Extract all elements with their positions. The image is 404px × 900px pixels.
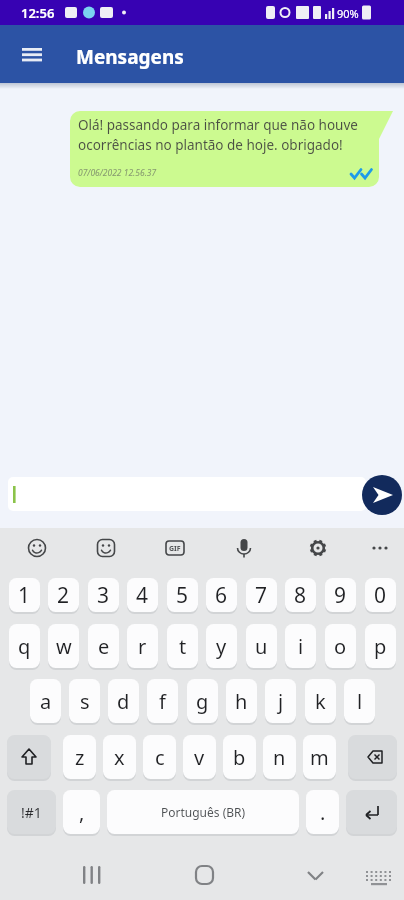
button[interactable] (300, 858, 332, 890)
button[interactable]: 4 (127, 578, 158, 612)
button[interactable]: k (305, 679, 336, 723)
staticText: f (159, 688, 166, 715)
button[interactable] (189, 858, 221, 890)
button[interactable] (89, 532, 123, 564)
button[interactable] (8, 477, 366, 511)
staticText: 12:56 (21, 4, 55, 22)
staticText: c (155, 744, 165, 771)
staticText: p (374, 633, 387, 660)
button[interactable]: b (223, 735, 256, 779)
button[interactable]: 0 (365, 578, 396, 612)
button[interactable]: u (246, 624, 277, 668)
button[interactable]: z (63, 735, 96, 779)
staticText: GIF (169, 544, 181, 554)
button[interactable]: l (344, 679, 375, 723)
staticText: n (273, 744, 286, 771)
staticText: s (80, 688, 90, 715)
button[interactable] (227, 532, 261, 564)
staticText: r (138, 633, 147, 660)
button[interactable] (296, 532, 330, 564)
staticText: 4 (136, 581, 149, 610)
staticText: 1 (18, 581, 31, 610)
button[interactable] (362, 475, 402, 515)
button[interactable]: r (127, 624, 158, 668)
staticText: a (40, 688, 52, 715)
staticText: i (298, 633, 304, 660)
staticText: 5 (176, 581, 189, 610)
button[interactable]: 1 (9, 578, 40, 612)
staticText: d (117, 688, 130, 715)
button[interactable] (362, 858, 394, 890)
button[interactable]: i (285, 624, 316, 668)
button[interactable]: 9 (325, 578, 356, 612)
staticText: q (18, 633, 31, 660)
button[interactable]: w (48, 624, 79, 668)
staticText: Português (BR) (161, 804, 246, 820)
staticText: 2 (57, 581, 70, 610)
button[interactable]: j (265, 679, 296, 723)
button[interactable]: q (9, 624, 40, 668)
staticText: 6 (215, 581, 228, 610)
staticText: m (310, 744, 329, 771)
button[interactable] (20, 532, 54, 564)
button[interactable]: 6 (206, 578, 237, 612)
button[interactable]: a (30, 679, 61, 723)
button[interactable] (365, 532, 399, 564)
staticText: ocorrências no plantão de hoje. obrigado… (78, 136, 343, 154)
button[interactable]: 5 (167, 578, 198, 612)
staticText: b (233, 744, 246, 771)
button[interactable] (7, 735, 51, 779)
button[interactable]: s (69, 679, 100, 723)
staticText: . (320, 799, 326, 826)
staticText: y (216, 633, 227, 660)
button[interactable]: 7 (246, 578, 277, 612)
staticText: j (278, 688, 284, 715)
staticText: 07/06/2022 12.56.37 (78, 167, 157, 179)
button[interactable]: p (365, 624, 396, 668)
button[interactable]: h (226, 679, 257, 723)
button[interactable]: n (263, 735, 296, 779)
staticText: k (315, 688, 326, 715)
staticText: u (255, 633, 268, 660)
staticText: x (114, 744, 125, 771)
button[interactable]: , (63, 790, 100, 834)
staticText: l (357, 688, 363, 715)
staticText: 9 (334, 581, 347, 610)
staticText: 90% (337, 6, 359, 21)
button[interactable] (14, 46, 52, 72)
staticText: !#1 (21, 803, 42, 822)
staticText: 7 (255, 581, 268, 610)
button[interactable]: c (143, 735, 176, 779)
staticText: 8 (294, 581, 307, 610)
button[interactable]: . (306, 790, 339, 834)
button[interactable]: 8 (285, 578, 316, 612)
button[interactable] (76, 858, 108, 890)
button[interactable] (348, 735, 397, 779)
staticText: o (334, 633, 347, 660)
staticText: Mensagens (76, 44, 184, 70)
button[interactable]: d (108, 679, 139, 723)
staticText: w (56, 633, 72, 660)
staticText: 3 (97, 581, 110, 610)
button[interactable]: v (183, 735, 216, 779)
staticText: , (79, 799, 85, 826)
button[interactable]: 2 (48, 578, 79, 612)
button[interactable]: m (303, 735, 336, 779)
button[interactable]: t (167, 624, 198, 668)
button[interactable]: g (187, 679, 218, 723)
button[interactable]: o (325, 624, 356, 668)
staticText: z (75, 744, 85, 771)
staticText: t (179, 633, 187, 660)
button[interactable]: !#1 (7, 790, 56, 834)
staticText: g (196, 688, 209, 715)
button[interactable]: e (88, 624, 119, 668)
button[interactable]: x (103, 735, 136, 779)
button[interactable]: f (147, 679, 178, 723)
button[interactable] (346, 790, 397, 834)
staticText: h (235, 688, 248, 715)
button[interactable] (158, 532, 192, 564)
button[interactable]: 3 (88, 578, 119, 612)
button[interactable]: y (206, 624, 237, 668)
button[interactable]: Português (BR) (107, 790, 299, 834)
staticText: Olá! passando para informar que não houv… (78, 116, 358, 134)
